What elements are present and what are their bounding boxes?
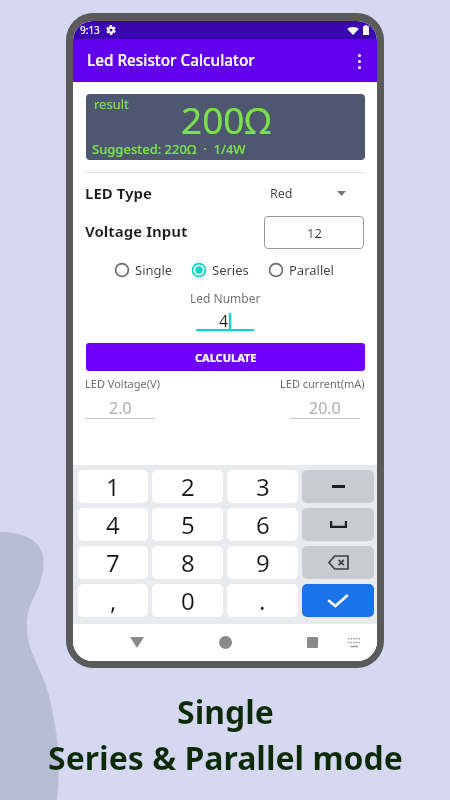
button[interactable]: Space: [302, 508, 374, 541]
staticText: Parallel: [289, 261, 334, 279]
button[interactable]: 0: [152, 584, 223, 617]
staticText: Voltage Input: [85, 221, 188, 241]
button[interactable]: 5: [152, 508, 223, 541]
button[interactable]: 6: [227, 508, 298, 541]
button[interactable]: Back: [115, 624, 159, 661]
staticText: result: [94, 95, 129, 113]
staticText: ,: [110, 584, 117, 617]
button[interactable]: Single: [114, 260, 173, 280]
button[interactable]: 7: [78, 546, 148, 579]
staticText: 4: [106, 508, 120, 541]
button[interactable]: More options: [345, 47, 373, 75]
staticText: 6: [256, 508, 270, 541]
staticText: CALCULATE: [195, 350, 257, 365]
button[interactable]: 2.0: [85, 397, 155, 419]
staticText: 12: [307, 224, 322, 242]
staticText: Single: [135, 261, 173, 279]
button[interactable]: 9: [227, 546, 298, 579]
staticText: LED Voltage(V): [85, 376, 160, 391]
button[interactable]: Minus: [302, 470, 374, 503]
staticText: Series & Parallel mode: [48, 736, 403, 780]
button[interactable]: .: [227, 584, 298, 617]
staticText: Led Resistor Calculator: [87, 50, 255, 71]
staticText: 2.0: [109, 397, 132, 419]
button[interactable]: 2: [152, 470, 223, 503]
staticText: 200Ω: [181, 94, 272, 144]
button[interactable]: Parallel: [268, 260, 334, 280]
staticText: 3: [256, 470, 270, 503]
button[interactable]: 4: [78, 508, 148, 541]
button[interactable]: 20.0: [290, 397, 360, 419]
staticText: LED Type: [85, 183, 153, 203]
staticText: 0: [181, 584, 195, 617]
staticText: 9: [256, 546, 270, 579]
staticText: 2: [181, 470, 195, 503]
staticText: Suggested: 220Ω · 1/4W: [92, 140, 246, 158]
button[interactable]: 1: [78, 470, 148, 503]
staticText: .: [259, 584, 266, 617]
staticText: 1: [106, 470, 120, 503]
button[interactable]: Switch keyboard: [338, 624, 370, 661]
staticText: Single: [177, 690, 274, 734]
button[interactable]: 12: [264, 216, 364, 249]
staticText: 5: [181, 508, 195, 541]
staticText: Series: [212, 261, 249, 279]
staticText: 9:13: [80, 23, 100, 37]
staticText: 20.0: [309, 397, 341, 419]
button[interactable]: 3: [227, 470, 298, 503]
button[interactable]: Red: [263, 181, 355, 205]
staticText: 4: [219, 310, 229, 332]
staticText: Led Number: [190, 290, 261, 306]
button[interactable]: Recents: [290, 624, 334, 661]
button[interactable]: 8: [152, 546, 223, 579]
button[interactable]: CALCULATE: [86, 343, 365, 371]
button[interactable]: ,: [78, 584, 148, 617]
button[interactable]: Backspace: [302, 546, 374, 579]
button[interactable]: Enter: [302, 584, 374, 617]
staticText: Red: [270, 185, 293, 202]
staticText: 8: [181, 546, 195, 579]
button[interactable]: Home: [203, 624, 247, 661]
button[interactable]: Series: [191, 260, 249, 280]
staticText: LED current(mA): [280, 376, 365, 391]
staticText: 7: [106, 546, 120, 579]
